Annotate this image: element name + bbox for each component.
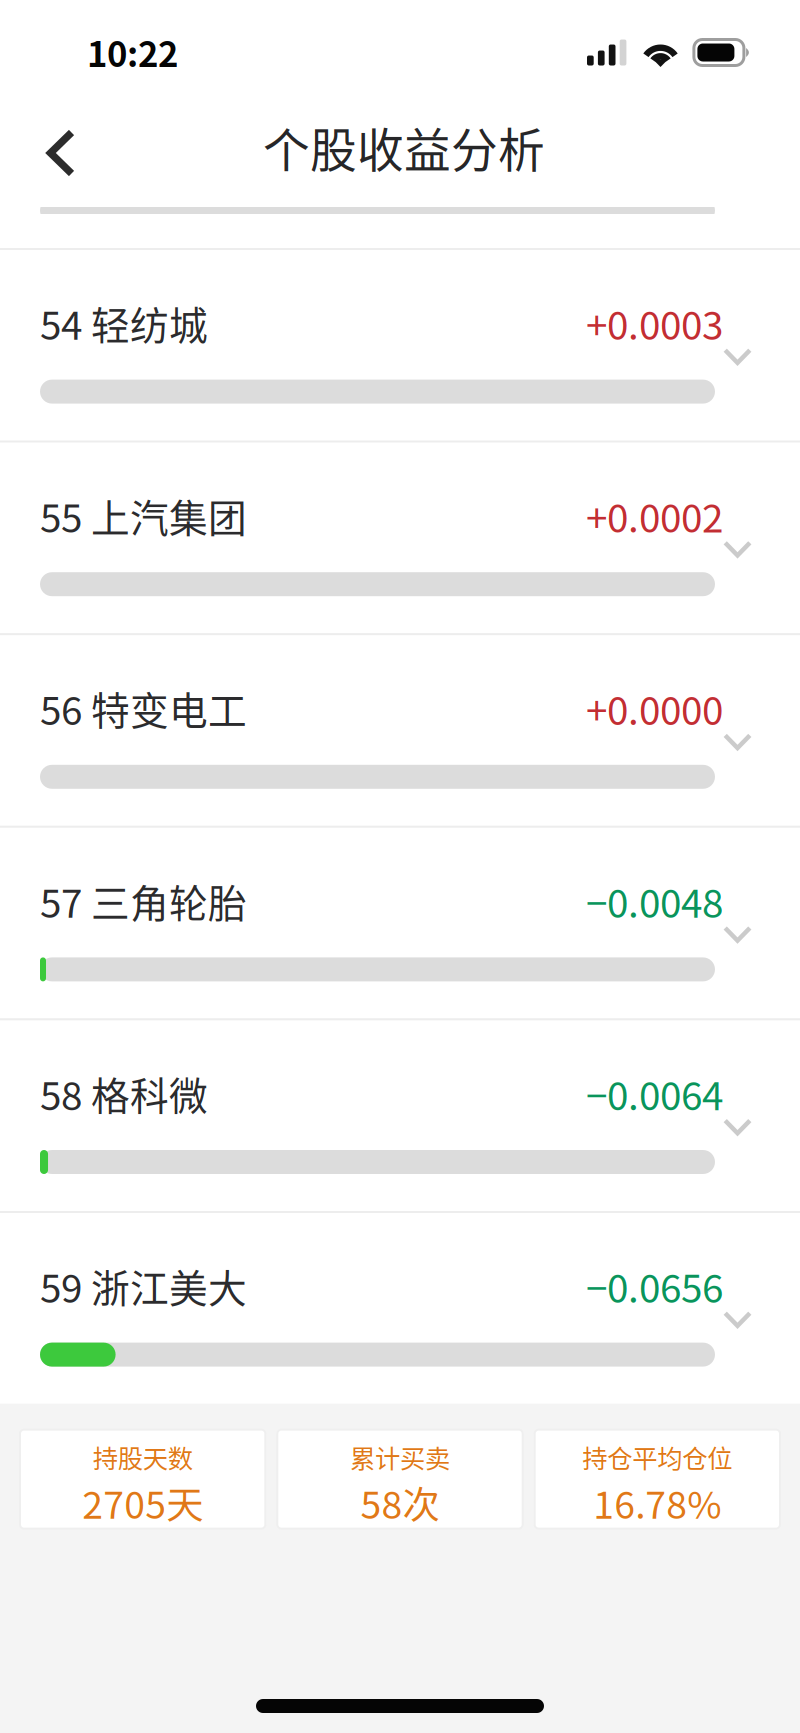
button[interactable]: 56 特变电工 — [0, 635, 800, 826]
button[interactable]: 58 格科微 — [0, 1020, 800, 1211]
staticText: 58次 — [360, 1475, 439, 1529]
staticText: −0.0064 — [586, 1065, 723, 1121]
button[interactable]: 累计买卖 — [277, 1430, 523, 1529]
button[interactable]: 持仓平均仓位 — [535, 1430, 780, 1529]
staticText: 57 三角轮胎 — [40, 873, 247, 929]
staticText: +0.0003 — [586, 295, 723, 351]
staticText: 个股收益分析 — [263, 113, 545, 181]
button[interactable]: 54 轻纺城 — [0, 250, 800, 441]
staticText: 持股天数 — [93, 1439, 193, 1475]
button[interactable]: 持股天数 — [20, 1430, 265, 1529]
staticText: 56 特变电工 — [40, 680, 247, 736]
button[interactable]: 59 浙江美大 — [0, 1213, 800, 1404]
staticText: +0.0002 — [586, 488, 723, 544]
button[interactable]: 55 上汽集团 — [0, 443, 800, 633]
staticText: 持仓平均仓位 — [582, 1439, 732, 1475]
staticText: −0.0048 — [586, 873, 723, 929]
button[interactable]: Back — [23, 91, 99, 197]
staticText: −0.0656 — [586, 1258, 723, 1314]
staticText: 58 格科微 — [40, 1065, 208, 1121]
staticText: 54 轻纺城 — [40, 295, 208, 351]
staticText: 55 上汽集团 — [40, 488, 247, 544]
staticText: 2705天 — [82, 1475, 203, 1529]
staticText: 59 浙江美大 — [40, 1258, 247, 1314]
staticText: 累计买卖 — [350, 1439, 450, 1475]
button[interactable]: 57 三角轮胎 — [0, 828, 800, 1018]
staticText: +0.0000 — [586, 680, 723, 736]
staticText: 16.78% — [593, 1475, 721, 1529]
staticText: 10:22 — [87, 27, 178, 77]
